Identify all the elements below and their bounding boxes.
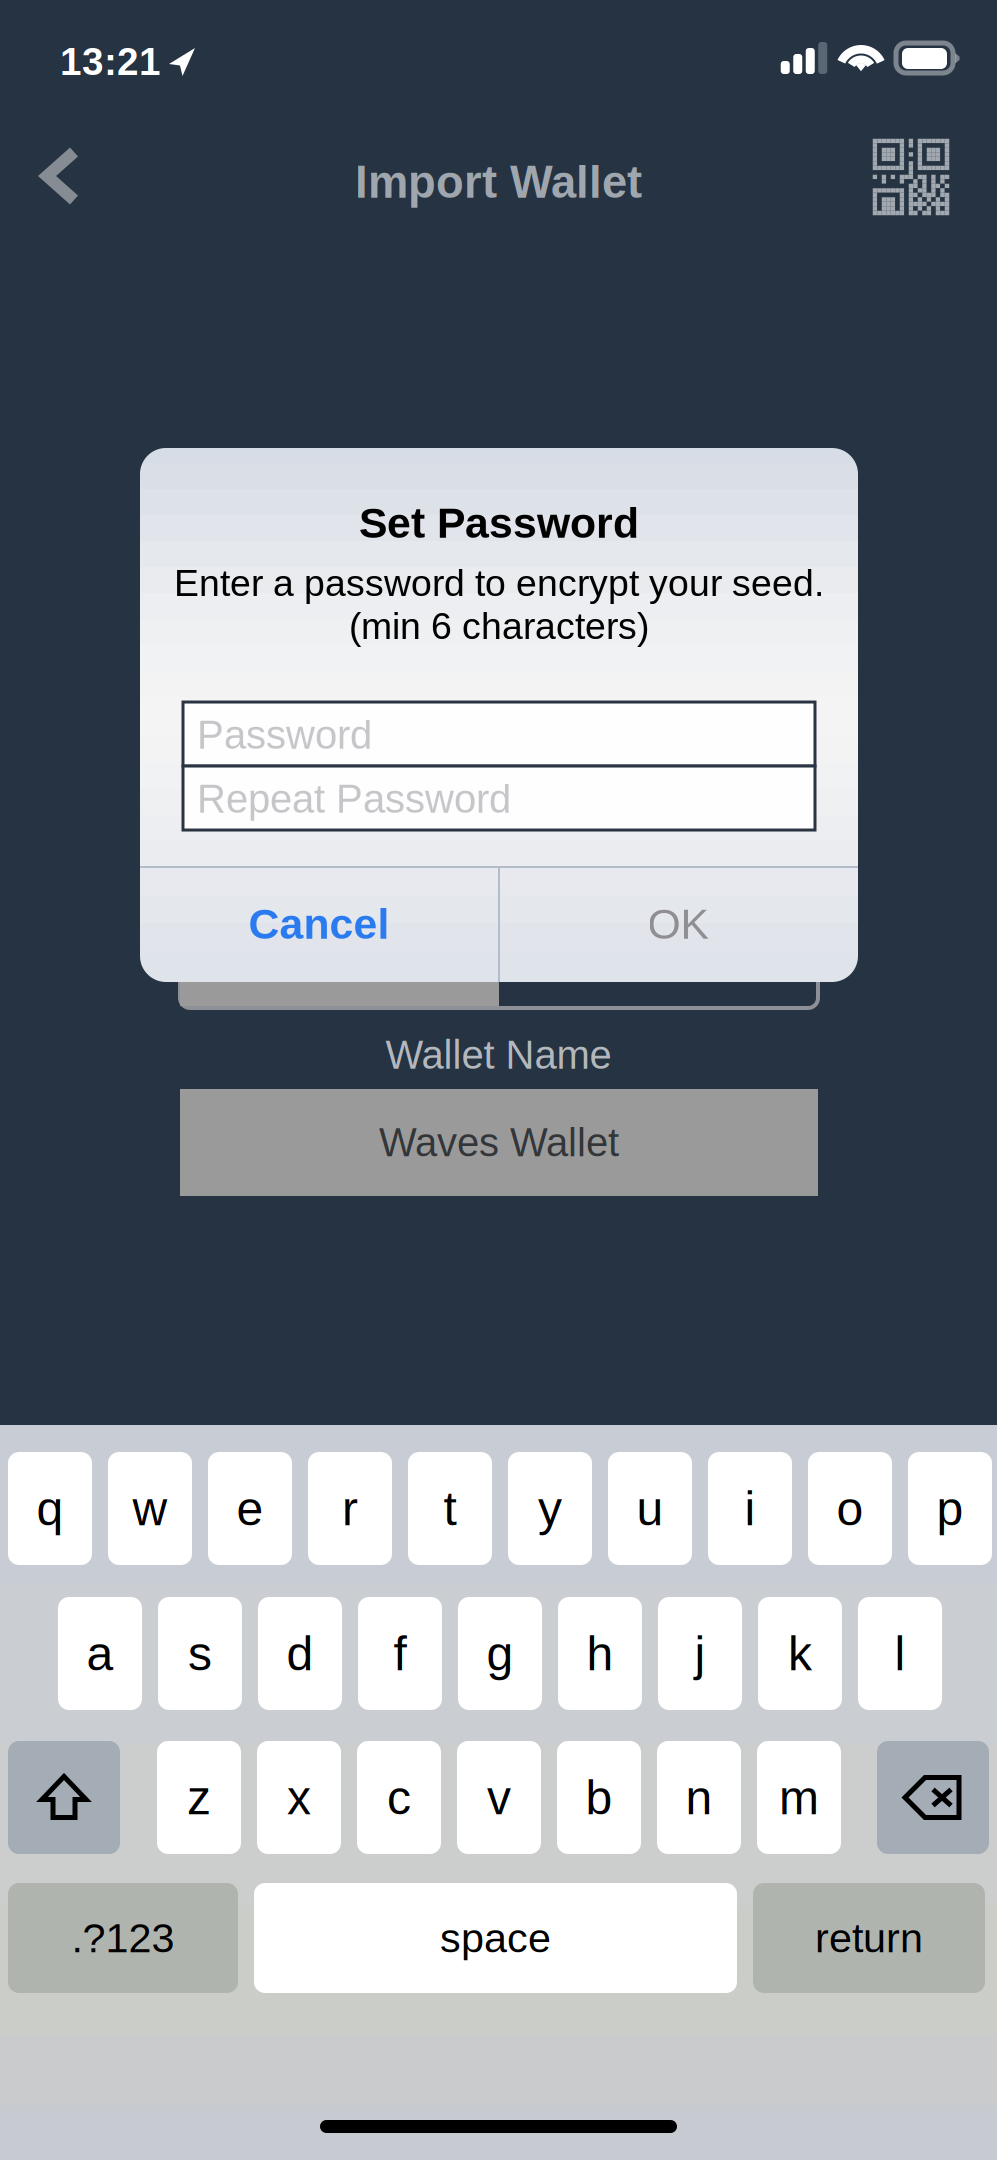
- button[interactable]: p: [908, 1452, 992, 1565]
- staticText: t: [443, 1482, 456, 1535]
- button[interactable]: s: [158, 1597, 242, 1710]
- staticText: q: [36, 1482, 63, 1535]
- button[interactable]: space: [254, 1883, 737, 1993]
- staticText: .?123: [71, 1915, 174, 1961]
- staticText: space: [440, 1915, 551, 1961]
- staticText: a: [86, 1627, 113, 1680]
- button[interactable]: Back: [5, 120, 115, 232]
- staticText: Password: [197, 713, 372, 757]
- button[interactable]: k: [758, 1597, 842, 1710]
- staticText: z: [187, 1771, 211, 1824]
- staticText: g: [486, 1627, 513, 1680]
- staticText: Waves Wallet: [379, 1120, 619, 1165]
- button[interactable]: b: [557, 1741, 641, 1854]
- staticText: Import Wallet: [355, 157, 642, 207]
- staticText: w: [132, 1482, 167, 1535]
- button[interactable]: w: [108, 1452, 192, 1565]
- staticText: y: [538, 1482, 562, 1535]
- button[interactable]: Shift: [8, 1741, 120, 1854]
- staticText: (min 6 characters): [349, 605, 649, 647]
- button[interactable]: Cancel: [140, 866, 498, 982]
- button[interactable]: h: [558, 1597, 642, 1710]
- button[interactable]: r: [308, 1452, 392, 1565]
- button[interactable]: a: [58, 1597, 142, 1710]
- staticText: l: [894, 1627, 905, 1680]
- staticText: k: [788, 1627, 812, 1680]
- staticText: Wallet Name: [385, 1033, 611, 1077]
- staticText: Enter a password to encrypt your seed.: [174, 562, 824, 604]
- button[interactable]: f: [358, 1597, 442, 1710]
- button[interactable]: d: [258, 1597, 342, 1710]
- staticText: Cancel: [248, 900, 389, 948]
- staticText: h: [586, 1627, 613, 1680]
- staticText: n: [685, 1771, 712, 1824]
- button[interactable]: q: [8, 1452, 92, 1565]
- button[interactable]: y: [508, 1452, 592, 1565]
- button[interactable]: m: [757, 1741, 841, 1854]
- staticText: s: [188, 1627, 212, 1680]
- button[interactable]: u: [608, 1452, 692, 1565]
- staticText: Set Password: [359, 499, 639, 547]
- button[interactable]: Scan QR code: [851, 121, 971, 233]
- button[interactable]: OK: [498, 866, 858, 982]
- staticText: return: [815, 1915, 923, 1961]
- button[interactable]: c: [357, 1741, 441, 1854]
- staticText: 13:21: [60, 40, 161, 83]
- staticText: e: [236, 1482, 263, 1535]
- staticText: d: [286, 1627, 313, 1680]
- button[interactable]: l: [858, 1597, 942, 1710]
- button[interactable]: return: [753, 1883, 985, 1993]
- staticText: r: [342, 1482, 358, 1535]
- staticText: m: [779, 1771, 819, 1824]
- staticText: o: [836, 1482, 863, 1535]
- staticText: i: [744, 1482, 755, 1535]
- button[interactable]: n: [657, 1741, 741, 1854]
- button[interactable]: v: [457, 1741, 541, 1854]
- button[interactable]: e: [208, 1452, 292, 1565]
- button[interactable]: g: [458, 1597, 542, 1710]
- staticText: Repeat Password: [197, 777, 511, 821]
- staticText: j: [694, 1627, 705, 1680]
- staticText: b: [585, 1771, 612, 1824]
- button[interactable]: i: [708, 1452, 792, 1565]
- staticText: c: [387, 1771, 411, 1824]
- staticText: f: [393, 1627, 406, 1680]
- button[interactable]: .?123: [8, 1883, 238, 1993]
- staticText: p: [936, 1482, 963, 1535]
- button[interactable]: Delete: [877, 1741, 989, 1854]
- button[interactable]: z: [157, 1741, 241, 1854]
- staticText: x: [287, 1771, 311, 1824]
- staticText: u: [636, 1482, 663, 1535]
- button[interactable]: x: [257, 1741, 341, 1854]
- button[interactable]: t: [408, 1452, 492, 1565]
- button[interactable]: j: [658, 1597, 742, 1710]
- staticText: OK: [647, 900, 708, 948]
- staticText: v: [487, 1771, 511, 1824]
- button[interactable]: o: [808, 1452, 892, 1565]
